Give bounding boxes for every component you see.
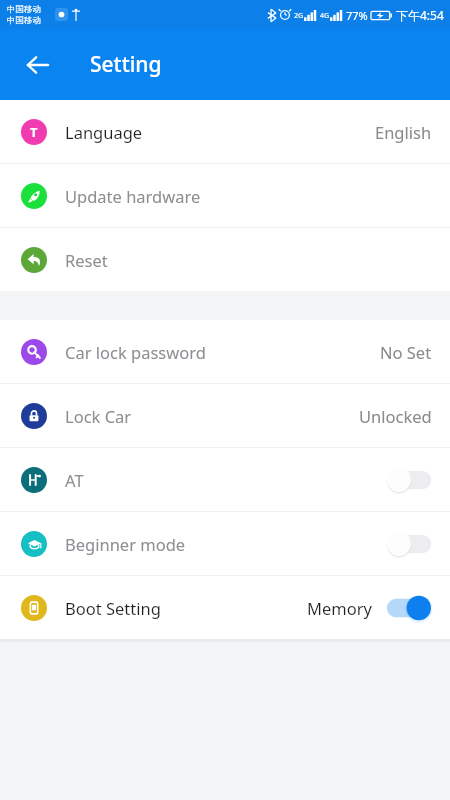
button[interactable]: Beginner mode: [0, 512, 450, 575]
button[interactable]: Reset: [0, 228, 450, 291]
button[interactable]: Update hardware: [0, 164, 450, 227]
button[interactable]: Toggle off: [386, 467, 432, 493]
staticText: 2G: [294, 11, 304, 21]
staticText: 中国移动: [7, 4, 41, 15]
staticText: Lock Car: [65, 405, 359, 427]
staticText: Car lock password: [65, 341, 380, 363]
staticText: Memory: [307, 597, 372, 619]
staticText: Setting: [90, 50, 162, 79]
staticText: Update hardware: [65, 185, 432, 207]
staticText: Boot Setting: [65, 597, 307, 619]
button[interactable]: AT: [0, 448, 450, 511]
staticText: AT: [65, 469, 372, 491]
staticText: 下午4:54: [396, 7, 444, 23]
button[interactable]: Car lock password: [0, 320, 450, 383]
staticText: 中国移动: [7, 15, 41, 26]
staticText: 4G: [320, 11, 330, 21]
staticText: Reset: [65, 249, 432, 271]
staticText: No Set: [380, 341, 432, 363]
button[interactable]: Lock Car: [0, 384, 450, 447]
staticText: English: [375, 121, 432, 143]
staticText: Language: [65, 121, 375, 143]
button[interactable]: Toggle off: [386, 531, 432, 557]
button[interactable]: Back: [14, 41, 62, 89]
button[interactable]: T: [0, 100, 450, 163]
staticText: Beginner mode: [65, 533, 372, 555]
button[interactable]: Toggle on: [386, 595, 432, 621]
staticText: 77%: [346, 8, 368, 23]
staticText: T: [30, 123, 38, 141]
staticText: Unlocked: [359, 405, 432, 427]
button[interactable]: Boot Setting: [0, 576, 450, 639]
